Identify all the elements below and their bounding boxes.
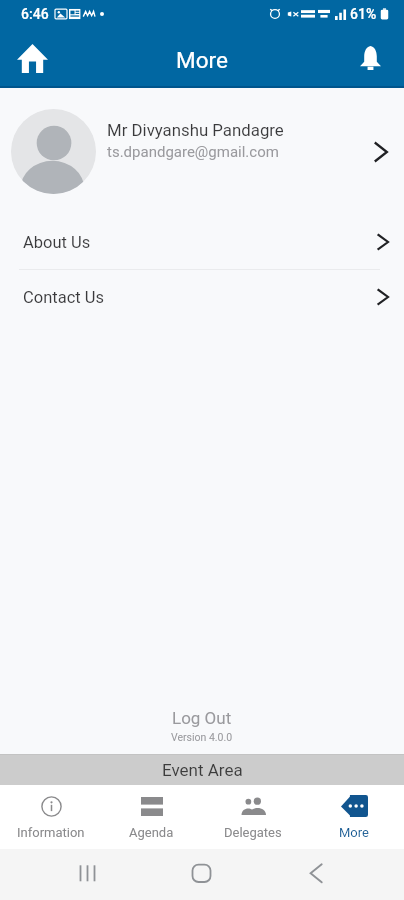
staticText: About Us — [23, 233, 91, 252]
button[interactable]: Delegates — [202, 785, 303, 849]
staticText: Contact Us — [23, 288, 104, 307]
staticText: Mr Divyanshu Pandagre — [107, 120, 284, 140]
staticText: 61% — [350, 6, 377, 22]
staticText: 6:46 — [21, 6, 49, 22]
staticText: More — [176, 47, 228, 73]
button[interactable]: Home — [10, 36, 54, 80]
button[interactable]: Notifications — [348, 36, 392, 80]
staticText: Version 4.0.0 — [171, 731, 233, 743]
staticText: Agenda — [129, 825, 174, 840]
staticText: More — [339, 825, 369, 840]
staticText: ts.dpandgare@gmail.com — [107, 143, 279, 161]
staticText: Information — [17, 825, 85, 840]
button[interactable]: Mr Divyanshu Pandagre — [0, 88, 404, 215]
staticText: Delegates — [224, 825, 282, 840]
button[interactable]: Log Out — [0, 708, 404, 754]
button[interactable]: Event Area — [0, 754, 404, 785]
button[interactable]: Agenda — [101, 785, 202, 849]
button[interactable]: About Us — [0, 215, 404, 269]
button[interactable]: More — [303, 785, 404, 849]
button[interactable]: Information — [0, 785, 101, 849]
button[interactable]: Contact Us — [0, 270, 404, 324]
staticText: Log Out — [172, 708, 232, 728]
staticText: Event Area — [162, 760, 243, 780]
